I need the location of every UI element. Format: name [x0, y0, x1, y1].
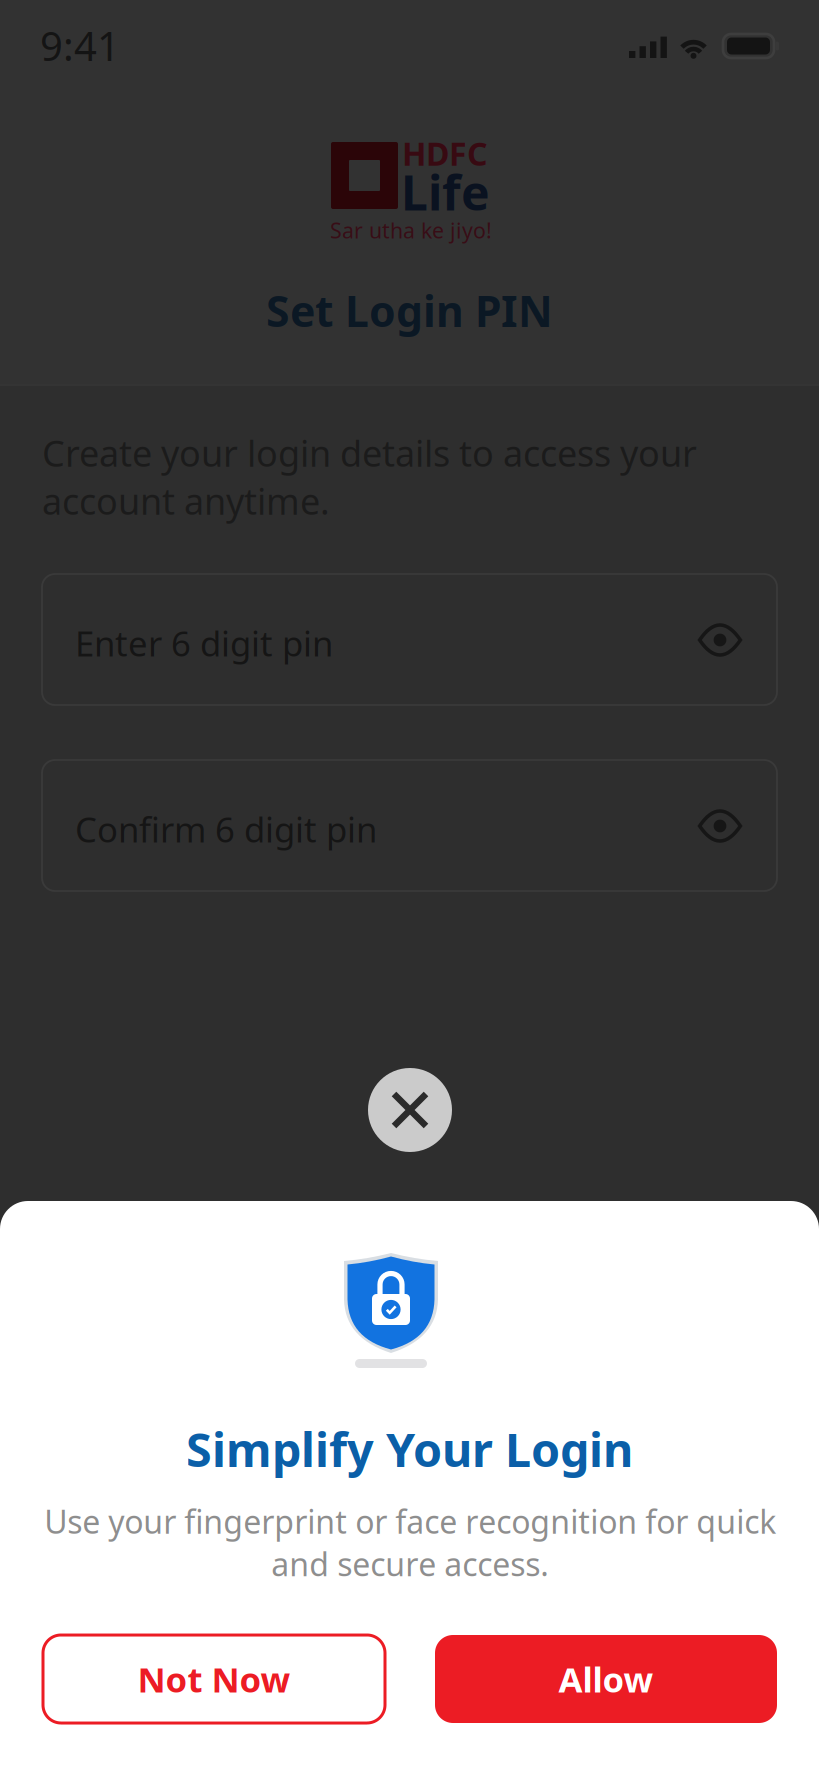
staticText: Life	[401, 160, 490, 224]
staticText: Use your fingerprint or face recognition…	[44, 1500, 776, 1585]
staticText: Simplify Your Login	[186, 1418, 633, 1480]
staticText: Enter 6 digit pin	[75, 620, 333, 666]
button[interactable]: Not Now	[43, 1635, 385, 1723]
staticText: Sar utha ke jiyo!	[330, 216, 492, 244]
staticText: Set Login PIN	[266, 282, 553, 339]
staticText: Create your login details to access your…	[42, 429, 697, 525]
button[interactable]: Confirm 6 digit pin	[42, 760, 777, 891]
button[interactable]: Allow	[435, 1635, 777, 1723]
button[interactable]: Enter 6 digit pin	[42, 574, 777, 705]
staticText: 9:41	[40, 19, 120, 72]
button[interactable]: Close	[368, 1068, 452, 1152]
staticText: Allow	[558, 1656, 653, 1702]
staticText: HDFC	[402, 132, 488, 174]
staticText: Not Now	[137, 1656, 290, 1702]
staticText: Confirm 6 digit pin	[75, 806, 377, 852]
